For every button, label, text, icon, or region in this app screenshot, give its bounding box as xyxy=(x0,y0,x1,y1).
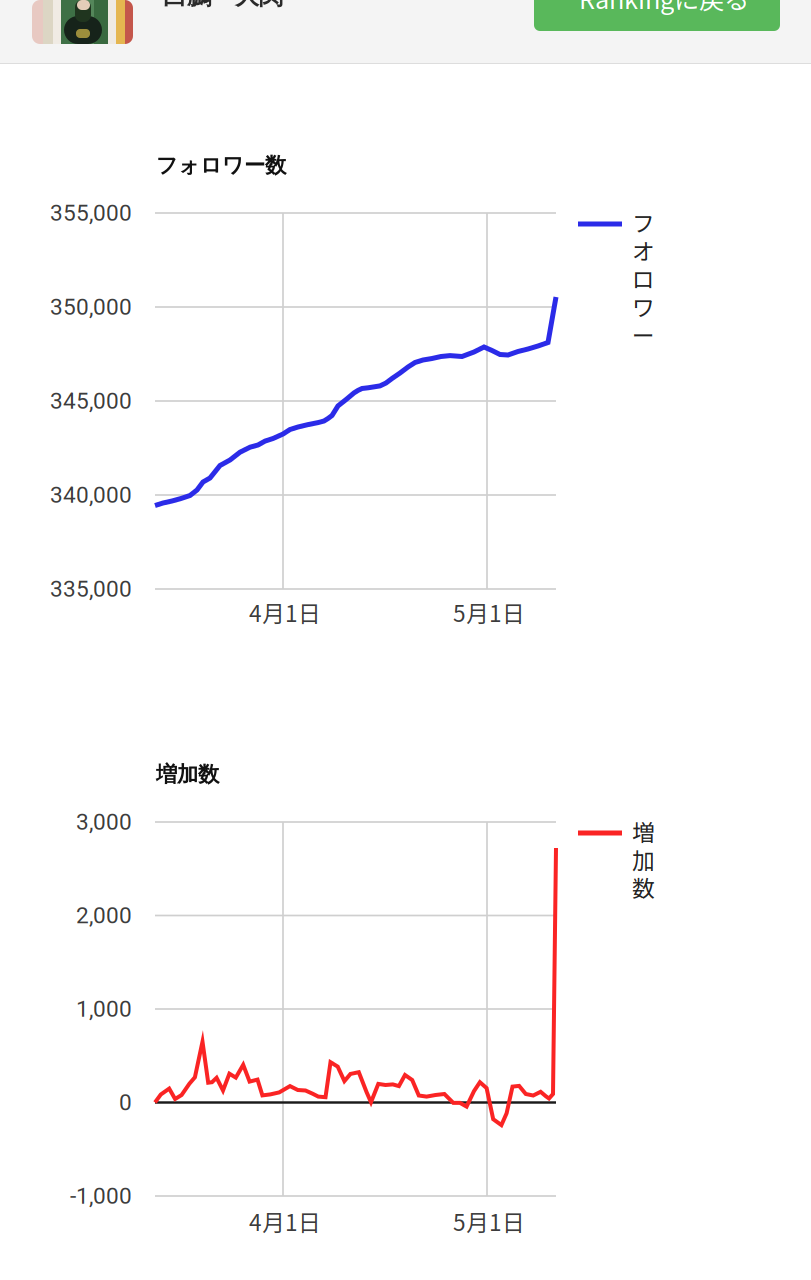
staticText: -1,000 xyxy=(70,1183,132,1209)
staticText: ワ xyxy=(632,290,655,323)
staticText: 3,000 xyxy=(76,809,132,835)
staticText: オ xyxy=(632,234,655,266)
staticText: 340,000 xyxy=(50,482,132,508)
staticText: フ xyxy=(632,206,655,238)
staticText: 355,000 xyxy=(50,200,132,226)
staticText: 加 xyxy=(632,843,655,875)
staticText: 増加数 xyxy=(156,761,219,788)
staticText: Rankingに戻る xyxy=(579,0,749,16)
button[interactable]: Rankingに戻る xyxy=(534,0,780,31)
staticText: 数 xyxy=(632,871,655,904)
staticText: 1,000 xyxy=(76,996,132,1022)
staticText: 2,000 xyxy=(76,902,132,929)
staticText: 350,000 xyxy=(50,294,132,320)
staticText: 白鵬・大関 xyxy=(163,0,283,11)
staticText: ロ xyxy=(632,262,655,295)
staticText: ー xyxy=(632,318,655,351)
staticText: フォロワー数 xyxy=(156,152,286,179)
staticText: 335,000 xyxy=(50,576,132,602)
staticText: 4月1日 xyxy=(249,1205,321,1237)
staticText: 0 xyxy=(119,1089,132,1116)
staticText: 増 xyxy=(632,815,655,847)
staticText: 345,000 xyxy=(50,388,132,414)
staticText: 5月1日 xyxy=(453,596,525,628)
staticText: 4月1日 xyxy=(249,596,321,628)
staticText: 5月1日 xyxy=(453,1205,525,1237)
